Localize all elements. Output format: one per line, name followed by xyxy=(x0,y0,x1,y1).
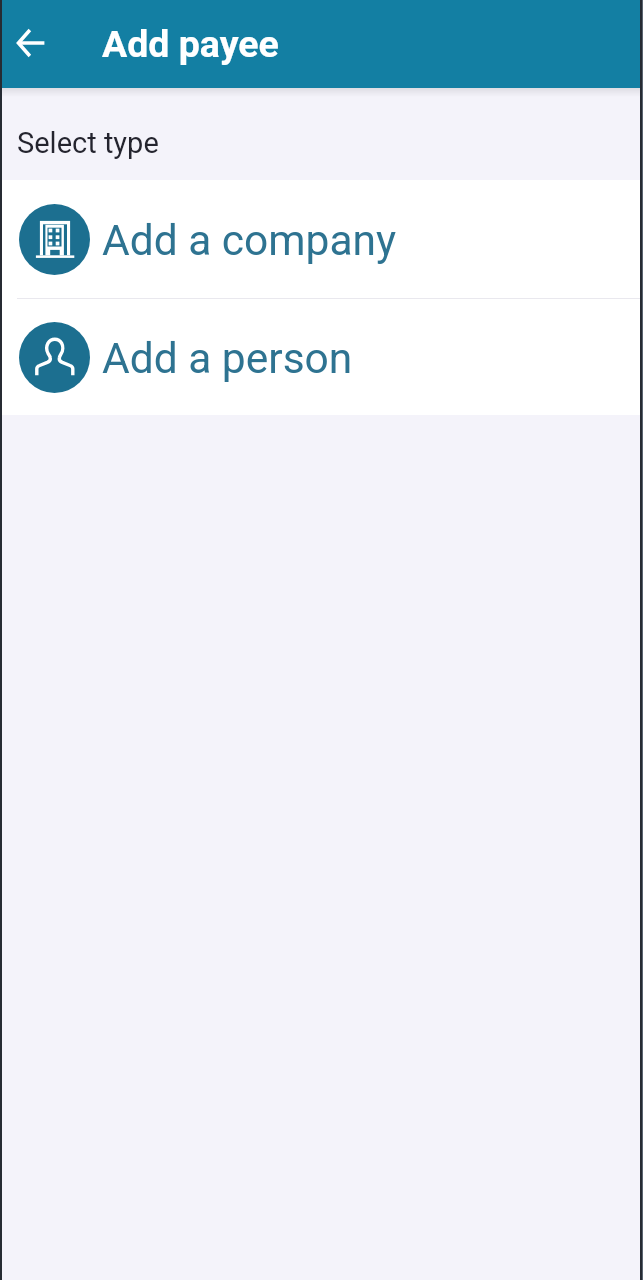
staticText: Add a person xyxy=(102,334,353,384)
staticText: Add payee xyxy=(102,22,279,66)
button[interactable]: Add a company xyxy=(0,180,643,298)
staticText: Add a company xyxy=(102,216,397,266)
staticText: Select type xyxy=(17,126,159,160)
button[interactable]: Back xyxy=(6,18,55,67)
button[interactable]: Add a person xyxy=(0,299,643,415)
